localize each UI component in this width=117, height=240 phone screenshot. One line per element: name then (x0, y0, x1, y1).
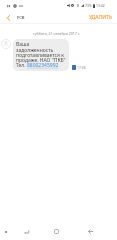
staticText: FCB (17, 15, 25, 21)
button[interactable]: Back (84, 223, 97, 240)
button[interactable]: Hide keyboard (20, 223, 33, 240)
staticText: УДАЛИТЬ (89, 14, 112, 21)
button[interactable]: УДАЛИТЬ (85, 11, 117, 24)
staticText: 13:42 (96, 3, 105, 8)
button[interactable]: Ваша задолженность подготавливается к пр… (13, 39, 69, 71)
staticText: Ваша задолженность подготавливается к пр… (16, 41, 66, 69)
staticText: 73% (85, 3, 92, 8)
staticText: суббота, 21 октября 2017 г. (33, 31, 81, 36)
button[interactable]: Back (0, 11, 16, 24)
button[interactable]: Recents (0, 223, 11, 240)
button[interactable]: Home (50, 223, 63, 240)
staticText: 17:08 (77, 65, 86, 70)
